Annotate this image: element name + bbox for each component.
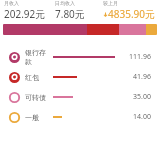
button[interactable]: 一般 — [0, 107, 160, 127]
staticText: 红包 — [25, 73, 39, 82]
button[interactable]: 日均收入 — [55, 0, 103, 21]
staticText: 月收入 — [4, 0, 19, 6]
other: 可转债 — [9, 92, 20, 103]
button[interactable]: 较上月 — [103, 0, 156, 21]
other: 红包 — [9, 72, 20, 83]
staticText: 202.92元 — [4, 7, 46, 21]
staticText: 一般 — [25, 113, 39, 122]
button[interactable]: 月收入 — [4, 0, 55, 21]
staticText: 14.00 — [133, 112, 151, 122]
staticText: 35.00 — [133, 92, 151, 102]
button[interactable]: 银行存款 — [0, 47, 160, 67]
staticText: 41.96 — [133, 72, 151, 82]
other: 银行存款 — [9, 52, 20, 63]
other: 一般 — [9, 112, 20, 123]
staticText: 可转债 — [25, 93, 46, 102]
staticText: 较上月 — [103, 0, 118, 6]
staticText: 7.80元 — [55, 7, 85, 21]
button[interactable]: 可转债 — [0, 87, 160, 107]
staticText: 银行存款 — [25, 48, 51, 66]
staticText: 111.96 — [129, 52, 151, 62]
button[interactable] — [3, 24, 157, 35]
staticText: 日均收入 — [55, 0, 75, 6]
staticText: 4835.90元 — [108, 7, 155, 21]
button[interactable]: 红包 — [0, 67, 160, 87]
